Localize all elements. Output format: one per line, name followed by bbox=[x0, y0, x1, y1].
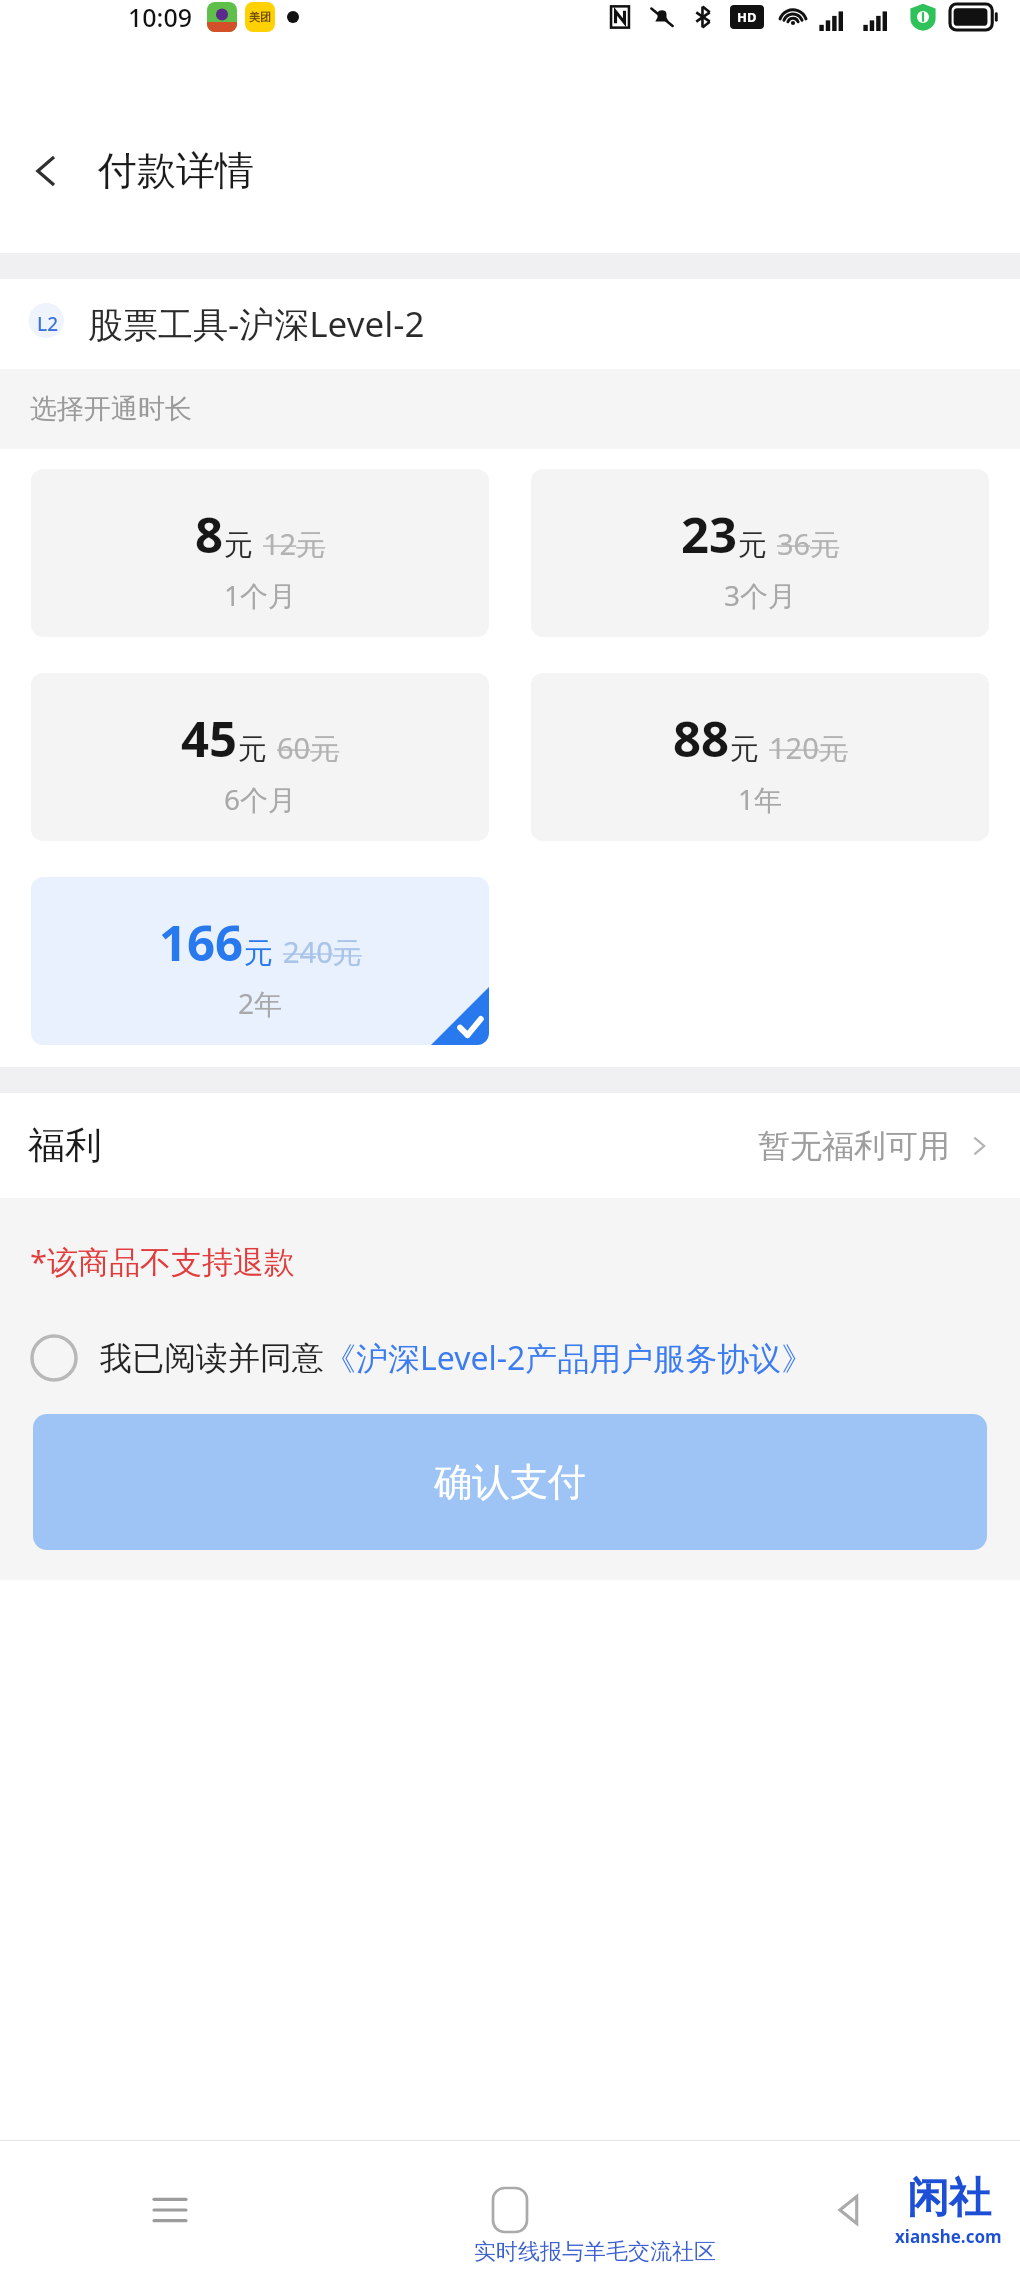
button[interactable]: 返回 bbox=[14, 139, 78, 203]
button[interactable]: 23 bbox=[531, 469, 989, 637]
staticText: 2年 bbox=[238, 984, 283, 1022]
staticText: 股票工具-沪深Level-2 bbox=[88, 300, 425, 348]
staticText: 福利 bbox=[28, 1122, 102, 1169]
button[interactable]: 我已阅读并同意 bbox=[0, 1334, 1020, 1382]
staticText: 确认支付 bbox=[434, 1458, 586, 1506]
button[interactable]: 88 bbox=[531, 673, 989, 841]
staticText: L2 bbox=[37, 311, 59, 337]
staticText: 8 bbox=[195, 501, 224, 568]
staticText: 45 bbox=[181, 705, 238, 772]
staticText: 元 bbox=[738, 527, 767, 564]
staticText: 1个月 bbox=[224, 576, 297, 614]
staticText: *该商品不支持退款 bbox=[30, 1240, 296, 1282]
staticText: 元 bbox=[244, 935, 273, 972]
staticText: 闲社 bbox=[907, 2172, 991, 2225]
staticText: 元 bbox=[730, 731, 759, 768]
staticText: 付款详情 bbox=[98, 146, 254, 195]
button[interactable]: 166 bbox=[31, 877, 489, 1045]
staticText: 选择开通时长 bbox=[30, 392, 192, 426]
staticText: 240元 bbox=[283, 932, 362, 972]
button[interactable]: L2 bbox=[0, 279, 1020, 369]
button[interactable]: 8 bbox=[31, 469, 489, 637]
button[interactable]: 最近任务 bbox=[0, 2141, 340, 2278]
staticText: 1年 bbox=[738, 780, 783, 818]
staticText: 166 bbox=[159, 909, 244, 976]
staticText: 12元 bbox=[263, 524, 326, 564]
staticText: HD bbox=[737, 8, 757, 26]
button[interactable]: 福利 bbox=[0, 1093, 1020, 1198]
staticText: xianshe.com bbox=[895, 2225, 1002, 2248]
staticText: 10:09 bbox=[128, 0, 193, 34]
button[interactable]: 返回 bbox=[680, 2141, 1020, 2278]
staticText: 23 bbox=[681, 501, 738, 568]
staticText: 美团 bbox=[249, 10, 271, 24]
staticText: 88 bbox=[673, 705, 730, 772]
staticText: 36元 bbox=[777, 524, 840, 564]
staticText: 暂无福利可用 bbox=[758, 1126, 950, 1166]
staticText: 实时线报与羊毛交流社区 bbox=[474, 2238, 716, 2266]
staticText: 3个月 bbox=[724, 576, 797, 614]
staticText: 60元 bbox=[277, 728, 340, 768]
button[interactable]: 《沪深Level-2产品用户服务协议》 bbox=[324, 1336, 814, 1380]
staticText: 元 bbox=[224, 527, 253, 564]
staticText: 6个月 bbox=[224, 780, 297, 818]
staticText: 我已阅读并同意 bbox=[100, 1338, 324, 1378]
button[interactable]: 确认支付 bbox=[33, 1414, 987, 1550]
button[interactable]: 45 bbox=[31, 673, 489, 841]
button[interactable]: 主屏幕 bbox=[340, 2141, 680, 2278]
staticText: 120元 bbox=[769, 728, 848, 768]
staticText: 元 bbox=[238, 731, 267, 768]
